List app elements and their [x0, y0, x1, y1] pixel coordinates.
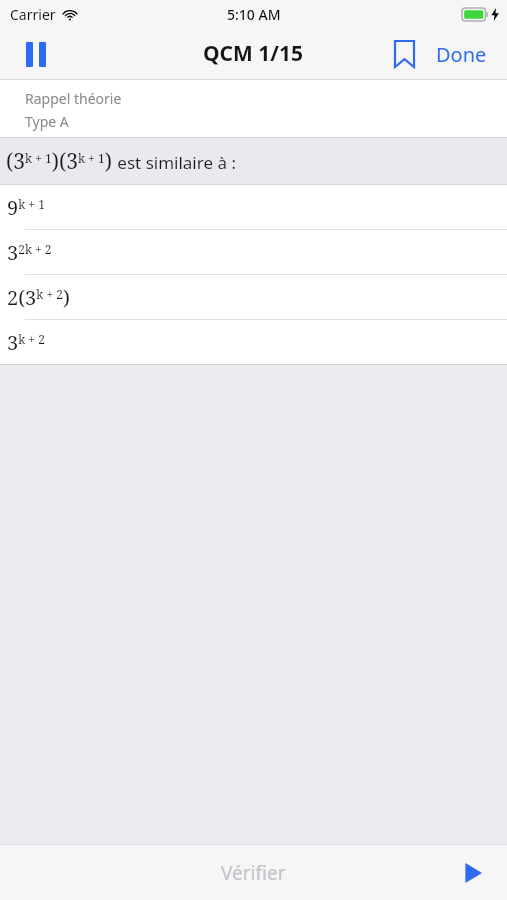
button[interactable]: Bookmark — [382, 32, 426, 76]
staticText: Carrier — [10, 5, 56, 24]
staticText: Vérifier — [221, 860, 286, 886]
button[interactable]: (3k + 1)(3k + 1) est similaire à : — [0, 138, 507, 184]
staticText: 9k + 1 — [7, 194, 45, 221]
staticText: Type A — [25, 112, 69, 131]
button[interactable]: 3k + 2 — [0, 320, 507, 364]
button[interactable]: Vérifier — [0, 845, 507, 900]
button[interactable]: Next — [453, 853, 493, 893]
button[interactable]: 32k + 2 — [0, 230, 507, 274]
staticText: 3k + 2 — [7, 329, 45, 356]
staticText: 32k + 2 — [7, 239, 52, 266]
button[interactable]: Pause — [14, 32, 58, 76]
staticText: 2(3k + 2) — [7, 284, 70, 311]
button[interactable]: 9k + 1 — [0, 185, 507, 229]
staticText: Rappel théorie — [25, 89, 122, 108]
button[interactable]: 2(3k + 2) — [0, 275, 507, 319]
staticText: QCM 1/15 — [203, 39, 304, 68]
button[interactable]: Done — [426, 33, 497, 76]
staticText: (3k + 1)(3k + 1) est similaire à : — [6, 147, 236, 176]
staticText: Done — [436, 41, 487, 68]
staticText: 5:10 AM — [227, 5, 281, 24]
